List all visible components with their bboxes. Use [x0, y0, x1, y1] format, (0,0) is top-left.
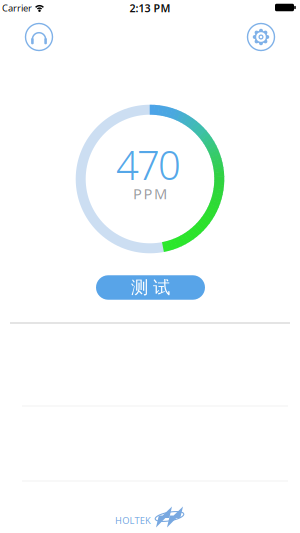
button[interactable]: Settings — [247, 23, 275, 51]
staticText: 测 试 — [131, 277, 170, 298]
staticText: 2:13 PM — [129, 1, 170, 15]
staticText: PPM — [133, 184, 167, 203]
staticText: 470 — [116, 138, 181, 191]
button[interactable]: 测 试 — [96, 275, 205, 300]
staticText: HOLTEK — [115, 514, 151, 527]
staticText: Carrier — [2, 2, 32, 14]
button[interactable]: Audio — [25, 23, 53, 51]
